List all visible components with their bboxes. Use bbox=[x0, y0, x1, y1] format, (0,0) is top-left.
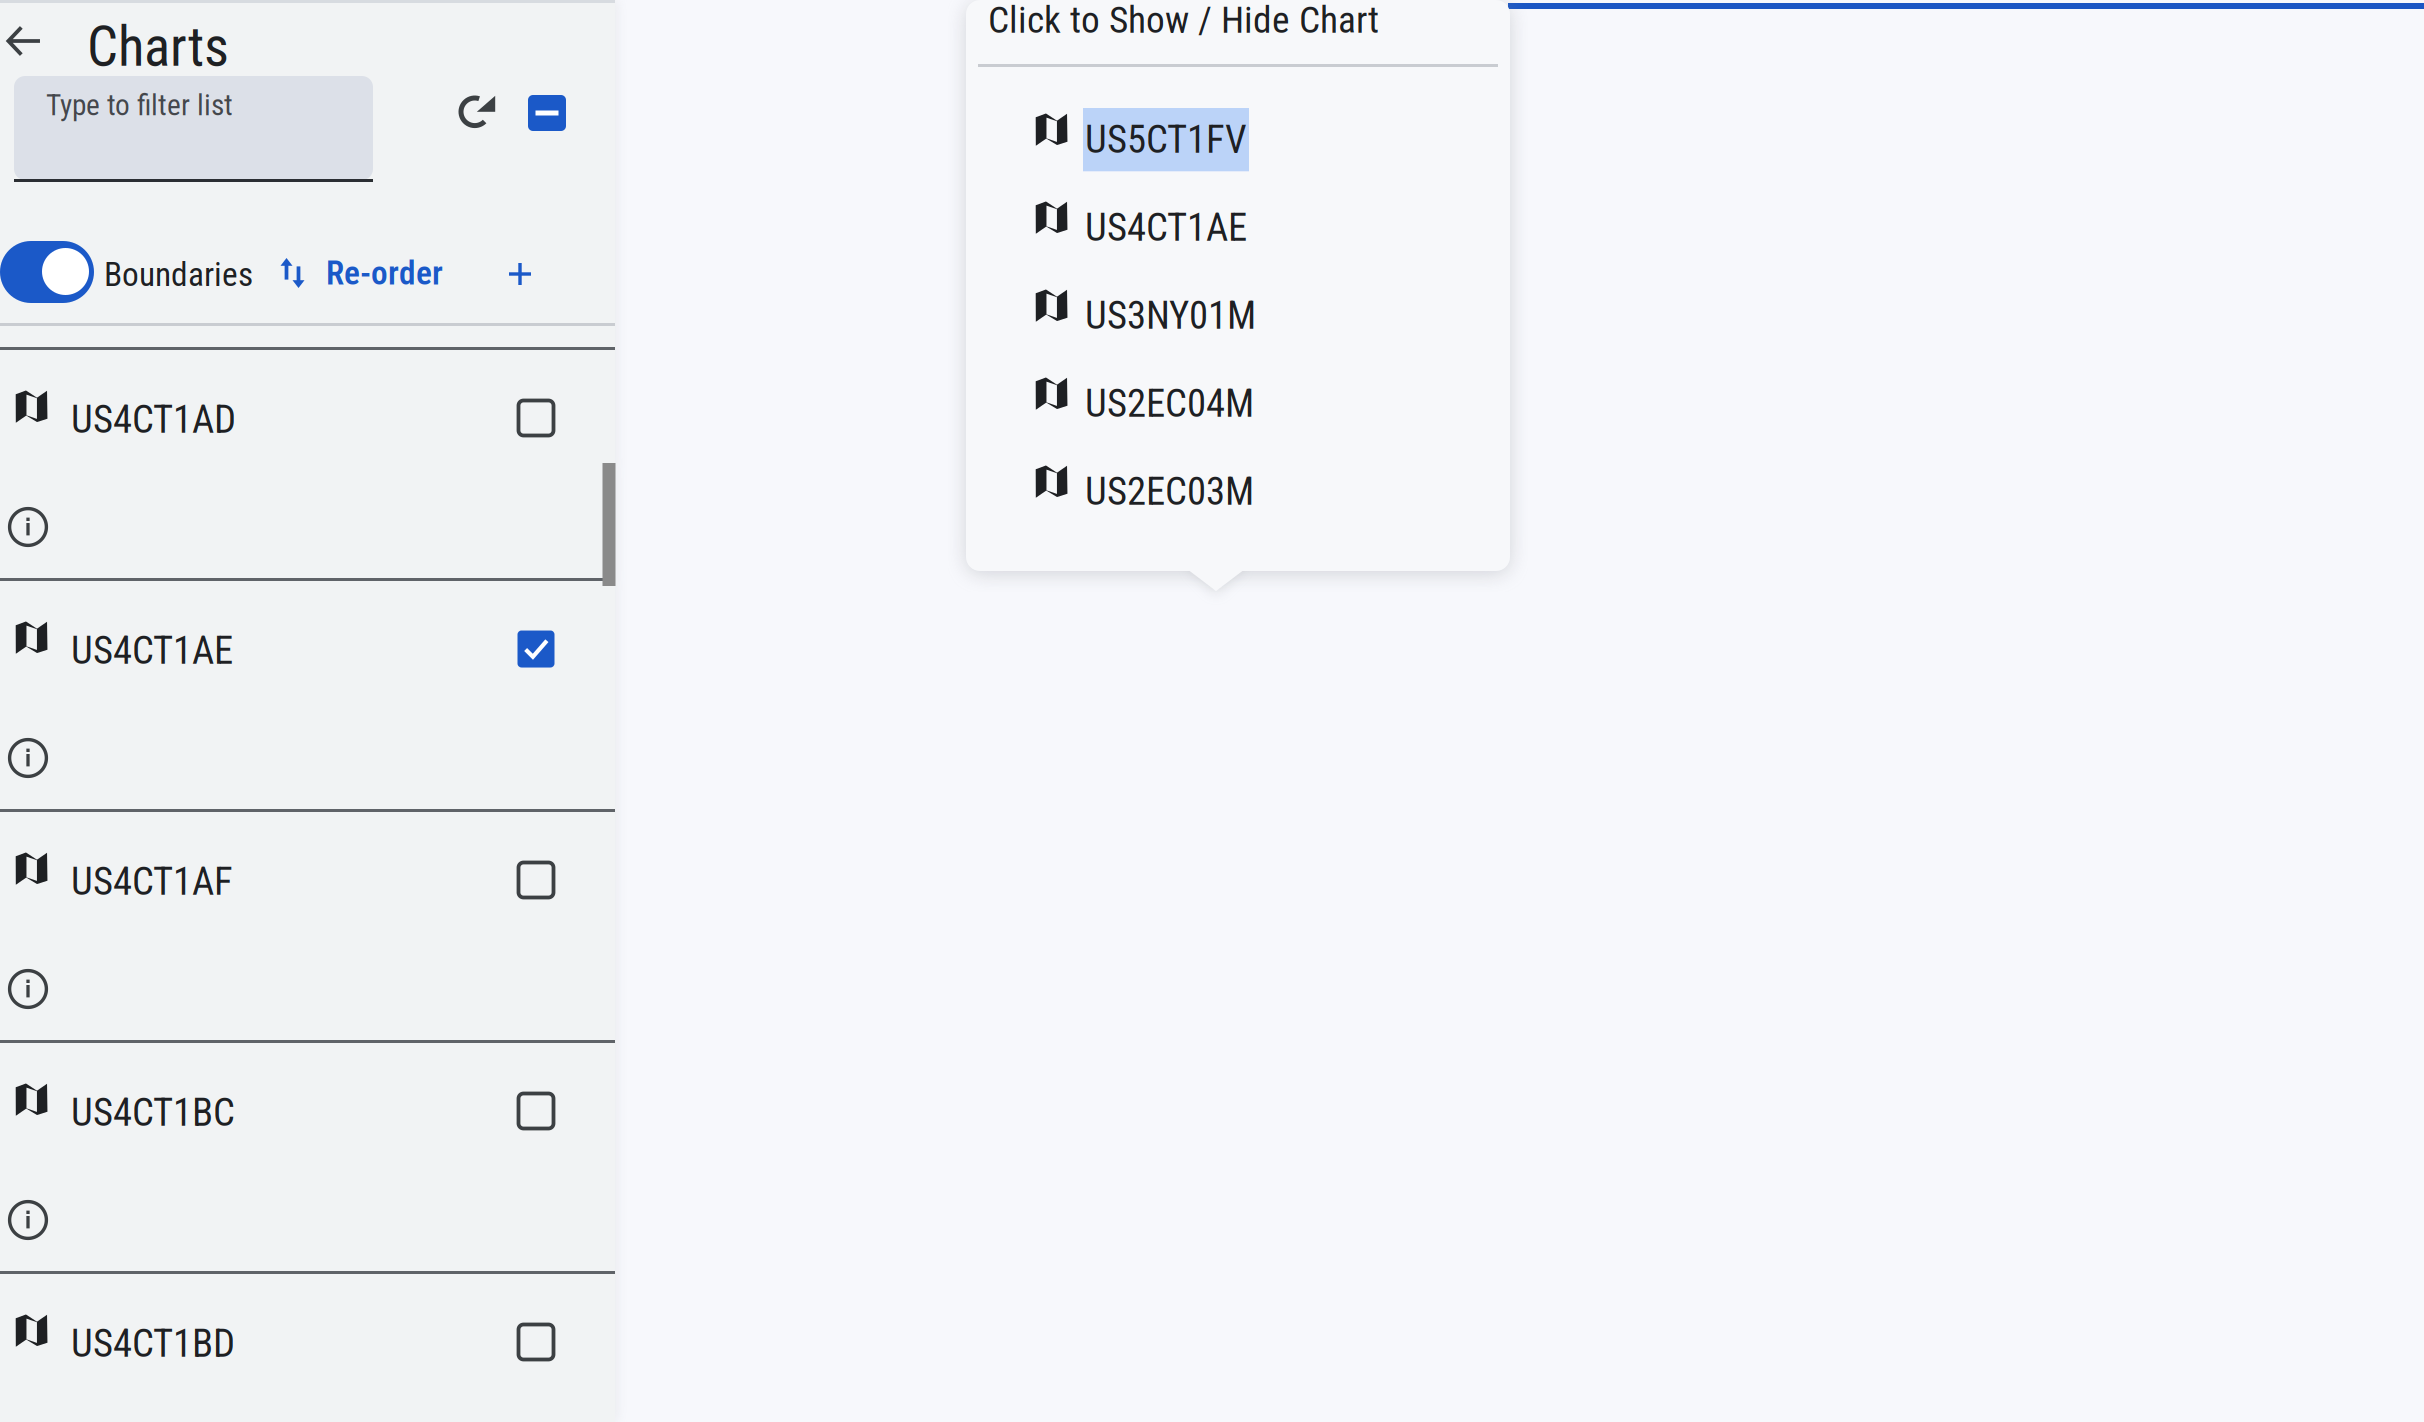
button[interactable]: US2EC03M bbox=[966, 444, 1510, 532]
staticText: US4CT1BC bbox=[71, 1090, 235, 1135]
button[interactable]: Select US4CT1AF bbox=[506, 850, 566, 910]
staticText: US5CT1FV bbox=[1085, 117, 1247, 162]
button[interactable]: Add bbox=[509, 263, 531, 285]
staticText: Charts bbox=[87, 15, 229, 79]
button[interactable]: Re-order bbox=[280, 253, 443, 293]
button[interactable]: US4CT1AE bbox=[966, 180, 1510, 268]
staticText: Type to filter list bbox=[46, 88, 233, 122]
button[interactable]: Refresh bbox=[447, 84, 505, 142]
button[interactable]: Boundaries toggle bbox=[0, 241, 94, 303]
button[interactable]: Collapse all bbox=[520, 86, 574, 140]
staticText: Boundaries bbox=[104, 255, 253, 294]
staticText: US4CT1AE bbox=[1085, 205, 1247, 250]
button[interactable]: Select US4CT1BD bbox=[506, 1312, 566, 1372]
button[interactable]: Info about US4CT1AD bbox=[0, 499, 160, 555]
staticText: Click to Show / Hide Chart bbox=[988, 0, 1379, 42]
staticText: US2EC04M bbox=[1085, 381, 1254, 426]
staticText: US4CT1AF bbox=[71, 859, 233, 904]
staticText: US4CT1AD bbox=[71, 397, 236, 442]
button[interactable]: Deselect US4CT1AE bbox=[506, 619, 566, 679]
button[interactable]: US5CT1FV bbox=[966, 92, 1510, 180]
button[interactable]: Back bbox=[4, 22, 44, 60]
button[interactable]: Info about US4CT1AF bbox=[0, 961, 160, 1017]
staticText: Re-order bbox=[326, 253, 443, 293]
button[interactable]: Select US4CT1BC bbox=[506, 1081, 566, 1141]
staticText: US2EC03M bbox=[1085, 469, 1254, 514]
button[interactable]: Info about US4CT1BC bbox=[0, 1192, 160, 1248]
staticText: US4CT1AE bbox=[71, 628, 233, 673]
staticText: US3NY01M bbox=[1085, 293, 1256, 338]
button[interactable]: US2EC04M bbox=[966, 356, 1510, 444]
staticText: US4CT1BD bbox=[71, 1321, 235, 1366]
button[interactable]: Select US4CT1AD bbox=[506, 388, 566, 448]
button[interactable]: US3NY01M bbox=[966, 268, 1510, 356]
button[interactable]: Info about US4CT1AE bbox=[0, 730, 160, 786]
